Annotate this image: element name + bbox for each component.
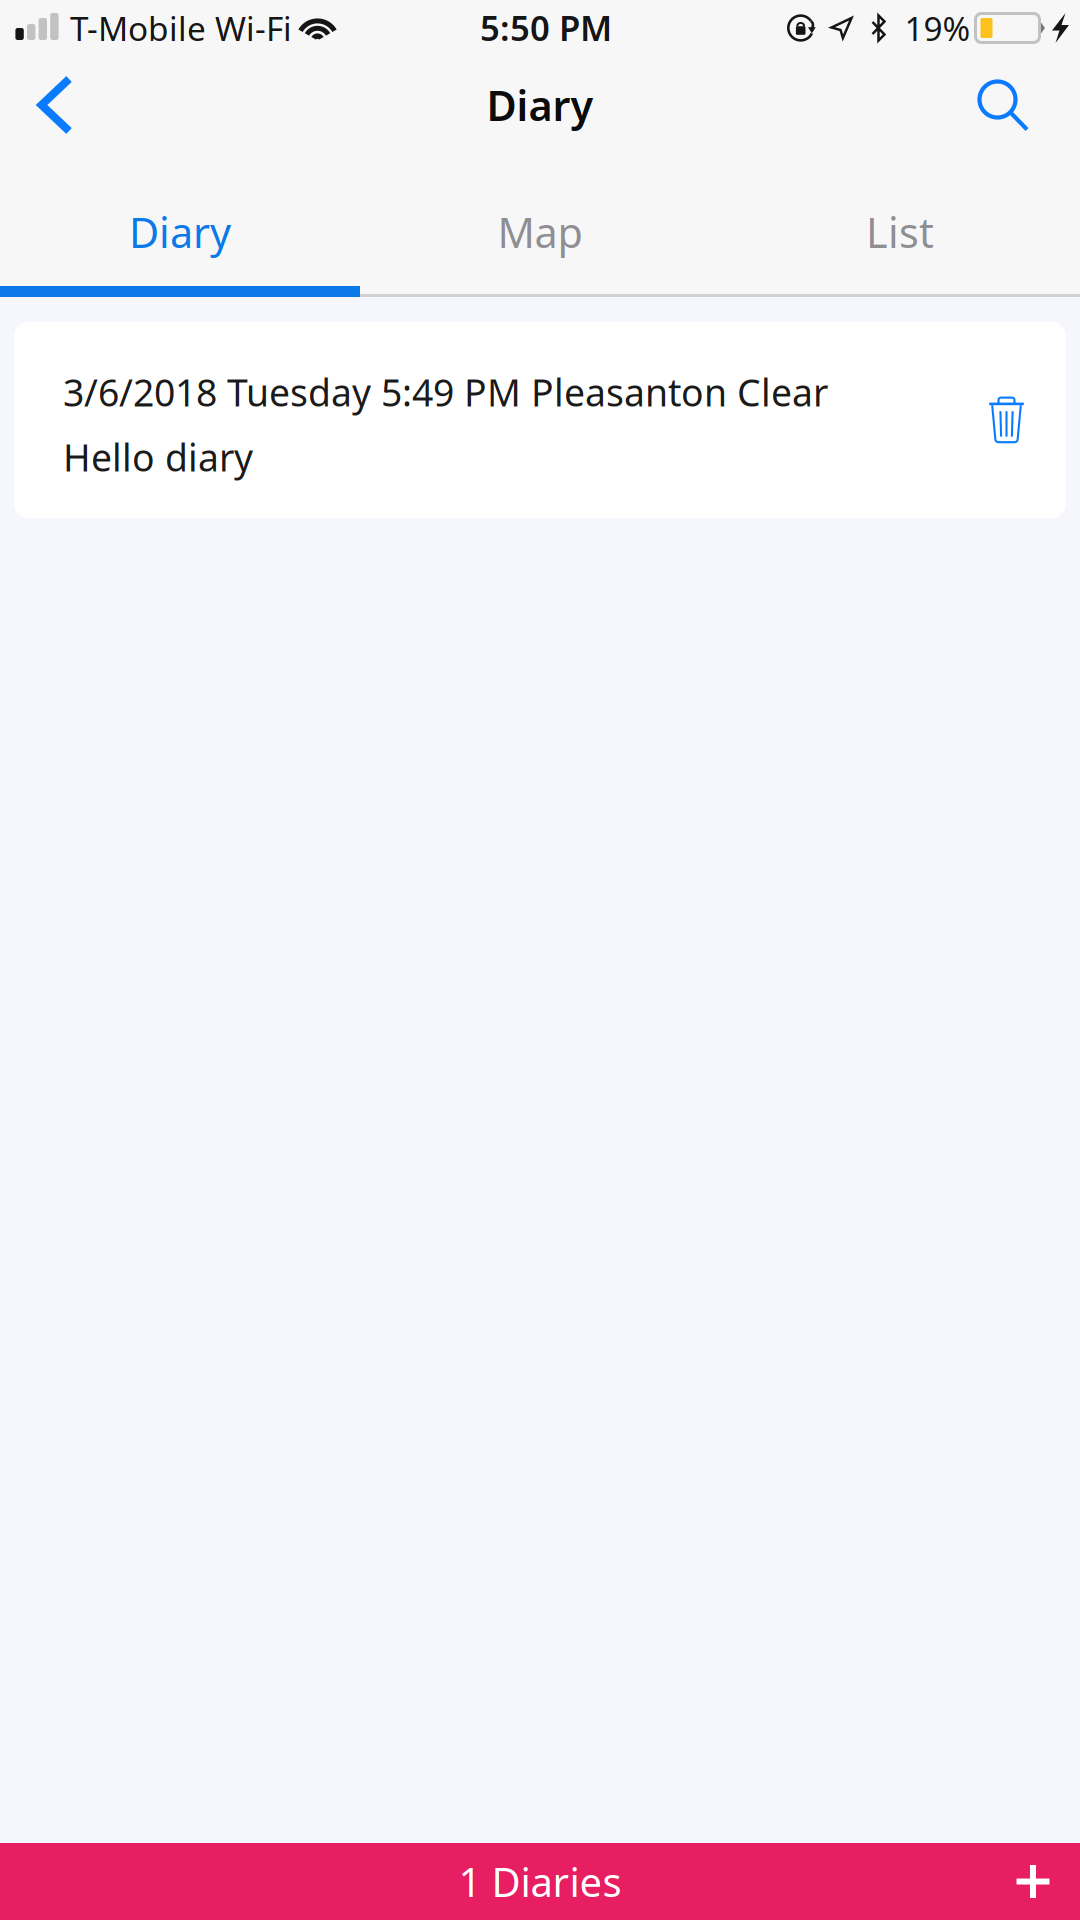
staticText: 19% — [904, 6, 970, 50]
button[interactable]: Delete entry — [988, 396, 1025, 445]
staticText: 5:50 PM — [480, 4, 612, 50]
staticText: 3/6/2018 Tuesday 5:49 PM Pleasanton Clea… — [63, 367, 828, 417]
button[interactable]: 3/6/2018 Tuesday 5:49 PM Pleasanton Clea… — [14, 322, 1066, 518]
staticText: 1 Diaries — [458, 1855, 621, 1908]
button[interactable]: Diary — [0, 160, 360, 286]
staticText: T-Mobile Wi-Fi — [70, 6, 292, 50]
button[interactable]: Search — [959, 56, 1047, 160]
staticText: Diary — [129, 205, 231, 259]
staticText: Diary — [486, 78, 593, 132]
staticText: Map — [497, 205, 582, 259]
button[interactable]: Add diary entry — [1007, 1855, 1059, 1907]
button[interactable]: Map — [360, 160, 720, 286]
staticText: Hello diary — [63, 432, 253, 482]
button[interactable]: List — [720, 160, 1080, 286]
button[interactable]: Back — [6, 56, 94, 160]
staticText: List — [866, 205, 934, 259]
